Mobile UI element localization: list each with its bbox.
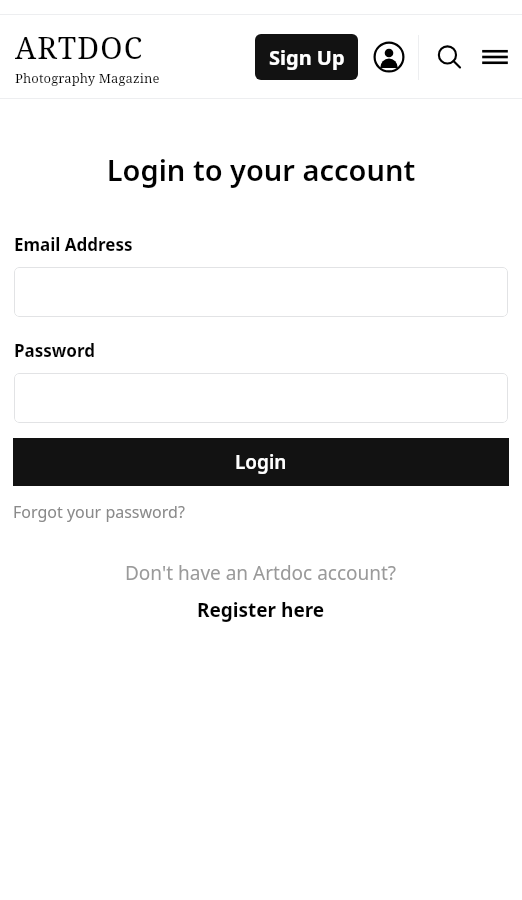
button[interactable] bbox=[14, 373, 508, 423]
staticText: Login to your account bbox=[0, 150, 522, 189]
staticText: Login bbox=[235, 449, 287, 475]
button[interactable]: Account bbox=[371, 39, 407, 75]
button[interactable]: Sign Up bbox=[255, 34, 358, 80]
button[interactable] bbox=[14, 267, 508, 317]
staticText: Email Address bbox=[14, 233, 133, 256]
staticText: Don't have an Artdoc account? bbox=[125, 560, 397, 586]
staticText: Password bbox=[14, 339, 95, 362]
staticText: ARTDOC bbox=[15, 27, 144, 68]
button[interactable]: Search bbox=[431, 39, 467, 75]
button[interactable]: Login bbox=[13, 438, 509, 486]
button[interactable]: Forgot your password? bbox=[13, 501, 185, 523]
staticText: Register here bbox=[197, 597, 325, 623]
staticText: Sign Up bbox=[269, 44, 345, 71]
button[interactable]: ARTDOC bbox=[13, 25, 162, 89]
button[interactable]: Register here bbox=[197, 597, 325, 623]
staticText: Photography Magazine bbox=[15, 69, 160, 87]
staticText: Forgot your password? bbox=[13, 501, 185, 523]
button[interactable]: Menu bbox=[477, 39, 513, 75]
